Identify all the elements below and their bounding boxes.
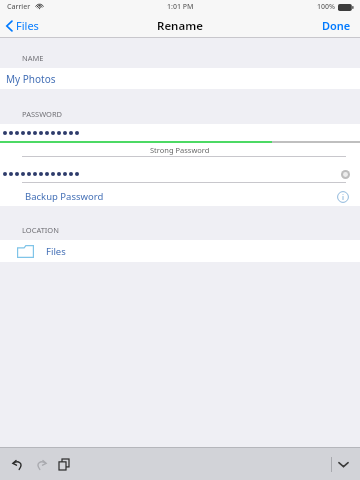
- staticText: Files: [16, 18, 39, 33]
- staticText: PASSWORD: [22, 109, 63, 119]
- staticText: 1:01 PM: [167, 2, 194, 12]
- button[interactable]: Backup password info: [336, 190, 350, 204]
- staticText: Carrier: [7, 2, 31, 12]
- button[interactable]: Files: [0, 240, 360, 262]
- button[interactable]: Done: [313, 14, 360, 37]
- button[interactable]: Hide keyboard: [332, 453, 355, 476]
- staticText: Files: [46, 245, 66, 258]
- staticText: Done: [322, 18, 351, 33]
- button[interactable]: Redo: [29, 453, 52, 476]
- staticText: Rename: [157, 18, 203, 34]
- staticText: Strong Password: [150, 145, 210, 155]
- button[interactable]: [0, 124, 360, 141]
- button[interactable]: My Photos: [0, 68, 360, 89]
- staticText: LOCATION: [22, 225, 59, 235]
- staticText: Backup Password: [25, 190, 104, 203]
- button[interactable]: Backup Password: [0, 187, 360, 206]
- staticText: NAME: [22, 53, 44, 63]
- button[interactable]: Files: [0, 14, 47, 37]
- button[interactable]: Undo: [6, 453, 29, 476]
- button[interactable]: Clear password: [0, 166, 360, 182]
- staticText: My Photos: [6, 72, 56, 86]
- staticText: 100%: [317, 2, 335, 12]
- button[interactable]: Clear password: [339, 168, 352, 181]
- button[interactable]: Paste: [52, 453, 75, 476]
